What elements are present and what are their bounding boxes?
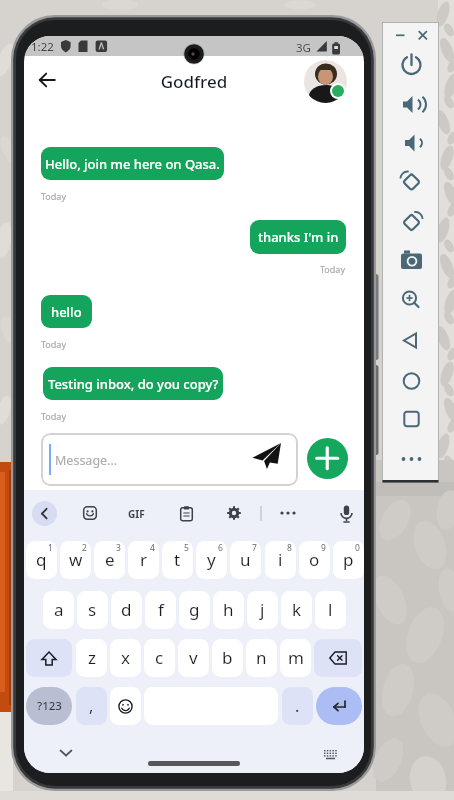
- button[interactable]: [396, 247, 424, 275]
- staticText: f: [158, 598, 164, 621]
- staticText: ,: [89, 695, 94, 717]
- staticText: 9: [321, 542, 326, 554]
- button[interactable]: [323, 749, 338, 760]
- button[interactable]: j: [247, 591, 278, 629]
- button[interactable]: y: [196, 541, 227, 579]
- button[interactable]: [180, 506, 193, 522]
- button[interactable]: [39, 73, 56, 87]
- button[interactable]: ?123: [26, 687, 72, 725]
- button[interactable]: hello: [41, 295, 92, 328]
- button[interactable]: l: [315, 591, 346, 629]
- button[interactable]: d: [111, 591, 142, 629]
- button[interactable]: f: [145, 591, 176, 629]
- staticText: e: [105, 548, 115, 571]
- button[interactable]: w: [60, 541, 91, 579]
- button[interactable]: r: [128, 541, 159, 579]
- staticText: w: [69, 548, 83, 571]
- staticText: ?123: [37, 698, 62, 714]
- staticText: 2: [82, 542, 87, 554]
- button[interactable]: g: [179, 591, 210, 629]
- staticText: q: [36, 548, 47, 571]
- staticText: k: [292, 598, 302, 621]
- button[interactable]: thanks I'm in: [250, 220, 346, 254]
- button[interactable]: i: [265, 541, 296, 579]
- staticText: p: [343, 548, 354, 571]
- staticText: z: [88, 646, 96, 669]
- button[interactable]: [396, 129, 424, 157]
- button[interactable]: GIF: [128, 507, 145, 521]
- button[interactable]: [396, 284, 424, 312]
- button[interactable]: [396, 327, 424, 355]
- button[interactable]: [396, 367, 424, 395]
- button[interactable]: [396, 445, 424, 473]
- button[interactable]: [251, 441, 285, 472]
- button[interactable]: c: [144, 639, 175, 677]
- button[interactable]: Hello, join me here on Qasa.: [41, 147, 224, 180]
- button[interactable]: n: [246, 639, 277, 677]
- staticText: t: [174, 548, 181, 571]
- button[interactable]: [339, 505, 354, 524]
- staticText: Today: [320, 263, 345, 275]
- button[interactable]: [304, 60, 347, 103]
- staticText: Today: [41, 338, 66, 350]
- button[interactable]: [41, 433, 298, 486]
- button[interactable]: [396, 51, 424, 79]
- button[interactable]: v: [178, 639, 209, 677]
- button[interactable]: [83, 506, 97, 520]
- button[interactable]: p: [333, 541, 364, 579]
- staticText: 7: [252, 542, 257, 554]
- staticText: u: [240, 548, 251, 571]
- button[interactable]: o: [299, 541, 330, 579]
- staticText: 8: [287, 542, 292, 554]
- button[interactable]: [396, 168, 424, 196]
- button[interactable]: [110, 687, 141, 725]
- button[interactable]: a: [43, 591, 74, 629]
- staticText: m: [288, 646, 304, 669]
- button[interactable]: Testing inbox, do you copy?: [43, 367, 223, 400]
- staticText: 5: [184, 542, 189, 554]
- staticText: n: [256, 646, 267, 669]
- staticText: 1: [48, 542, 53, 554]
- button[interactable]: [278, 506, 298, 520]
- staticText: h: [223, 598, 234, 621]
- button[interactable]: m: [280, 639, 311, 677]
- button[interactable]: e: [94, 541, 125, 579]
- button[interactable]: q: [26, 541, 57, 579]
- staticText: Message...: [55, 452, 118, 469]
- staticText: hello: [51, 303, 82, 321]
- button[interactable]: ,: [76, 687, 107, 725]
- button[interactable]: [59, 749, 73, 757]
- button[interactable]: k: [281, 591, 312, 629]
- staticText: d: [121, 598, 132, 621]
- button[interactable]: [227, 506, 241, 520]
- staticText: Hello, join me here on Qasa.: [45, 155, 220, 173]
- button[interactable]: [32, 501, 57, 526]
- button[interactable]: [307, 438, 348, 479]
- staticText: Today: [41, 410, 66, 422]
- staticText: 0: [355, 542, 360, 554]
- staticText: 4: [150, 542, 155, 554]
- button[interactable]: [396, 91, 424, 119]
- button[interactable]: z: [76, 639, 107, 677]
- button[interactable]: u: [230, 541, 261, 579]
- staticText: 3G: [296, 40, 311, 56]
- button[interactable]: [314, 639, 362, 677]
- button[interactable]: s: [77, 591, 108, 629]
- staticText: Testing inbox, do you copy?: [48, 375, 219, 393]
- staticText: a: [54, 598, 64, 621]
- button[interactable]: [316, 687, 362, 725]
- button[interactable]: b: [212, 639, 243, 677]
- button[interactable]: [26, 639, 72, 677]
- button[interactable]: [148, 761, 240, 766]
- staticText: c: [155, 646, 164, 669]
- staticText: g: [189, 598, 200, 621]
- button[interactable]: .: [282, 687, 313, 725]
- button[interactable]: h: [213, 591, 244, 629]
- button[interactable]: t: [162, 541, 193, 579]
- button[interactable]: x: [110, 639, 141, 677]
- staticText: v: [189, 646, 198, 669]
- staticText: 6: [218, 542, 223, 554]
- button[interactable]: [396, 209, 424, 237]
- button[interactable]: [396, 405, 424, 433]
